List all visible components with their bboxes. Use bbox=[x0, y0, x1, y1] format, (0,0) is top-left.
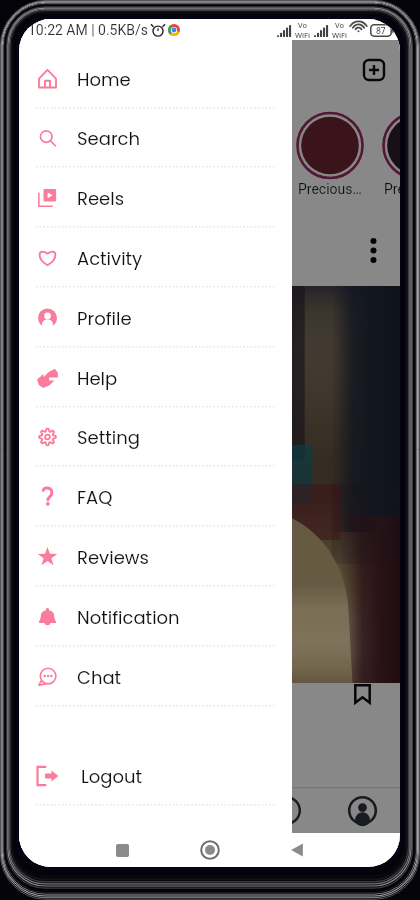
button[interactable]: Home bbox=[19, 49, 292, 109]
staticText: Home bbox=[77, 67, 131, 92]
button[interactable]: New post bbox=[363, 59, 385, 81]
button[interactable]: Search bbox=[96, 787, 172, 834]
button[interactable]: Notification bbox=[19, 587, 292, 647]
button[interactable]: Profile bbox=[324, 787, 400, 834]
staticText: Chat bbox=[77, 665, 122, 690]
button[interactable]: Setting bbox=[19, 407, 292, 467]
staticText: Notification bbox=[77, 605, 180, 630]
button[interactable]: Home bbox=[200, 840, 220, 860]
staticText: Precious… bbox=[298, 181, 362, 197]
button[interactable]: Chat bbox=[19, 647, 292, 707]
staticText: Reviews bbox=[77, 545, 149, 570]
button[interactable]: Activity bbox=[19, 228, 292, 288]
staticText: Help bbox=[77, 366, 118, 391]
staticText: WiFi bbox=[295, 30, 311, 40]
staticText: FAQ bbox=[77, 485, 113, 510]
button[interactable]: Reels bbox=[19, 168, 292, 228]
button[interactable]: Precious… bbox=[29, 181, 115, 203]
button[interactable]: Reviews bbox=[19, 527, 292, 587]
staticText: Vo bbox=[298, 20, 308, 30]
staticText: 10:22 AM | 0.5KB/s bbox=[28, 22, 148, 38]
staticText: Precious… bbox=[384, 181, 400, 197]
staticText: WiFi bbox=[332, 30, 348, 40]
button[interactable]: Recents bbox=[116, 844, 129, 857]
staticText: Precious… bbox=[40, 181, 104, 197]
staticText: Instagram bbox=[31, 57, 130, 83]
button[interactable]: Profile bbox=[19, 288, 292, 348]
button[interactable]: Precious… bbox=[115, 181, 201, 203]
button[interactable]: Help bbox=[19, 348, 292, 408]
button[interactable]: Search bbox=[19, 108, 292, 168]
button[interactable]: Messages bbox=[248, 787, 324, 834]
button[interactable]: Precious… bbox=[287, 181, 373, 203]
button[interactable]: Back bbox=[290, 842, 304, 858]
button[interactable]: Precious… bbox=[373, 181, 400, 203]
staticText: Vo bbox=[335, 20, 345, 30]
button[interactable]: FAQ bbox=[19, 467, 292, 527]
staticText: Search bbox=[77, 126, 141, 151]
staticText: Reels bbox=[77, 186, 125, 211]
staticText: Activity bbox=[77, 246, 143, 271]
button[interactable]: Save bbox=[354, 684, 371, 704]
staticText: Logout bbox=[81, 764, 143, 789]
staticText: Profile bbox=[77, 306, 132, 331]
staticText: 87 bbox=[376, 25, 386, 37]
staticText: Setting bbox=[77, 425, 140, 450]
button[interactable]: Logout bbox=[19, 746, 292, 806]
